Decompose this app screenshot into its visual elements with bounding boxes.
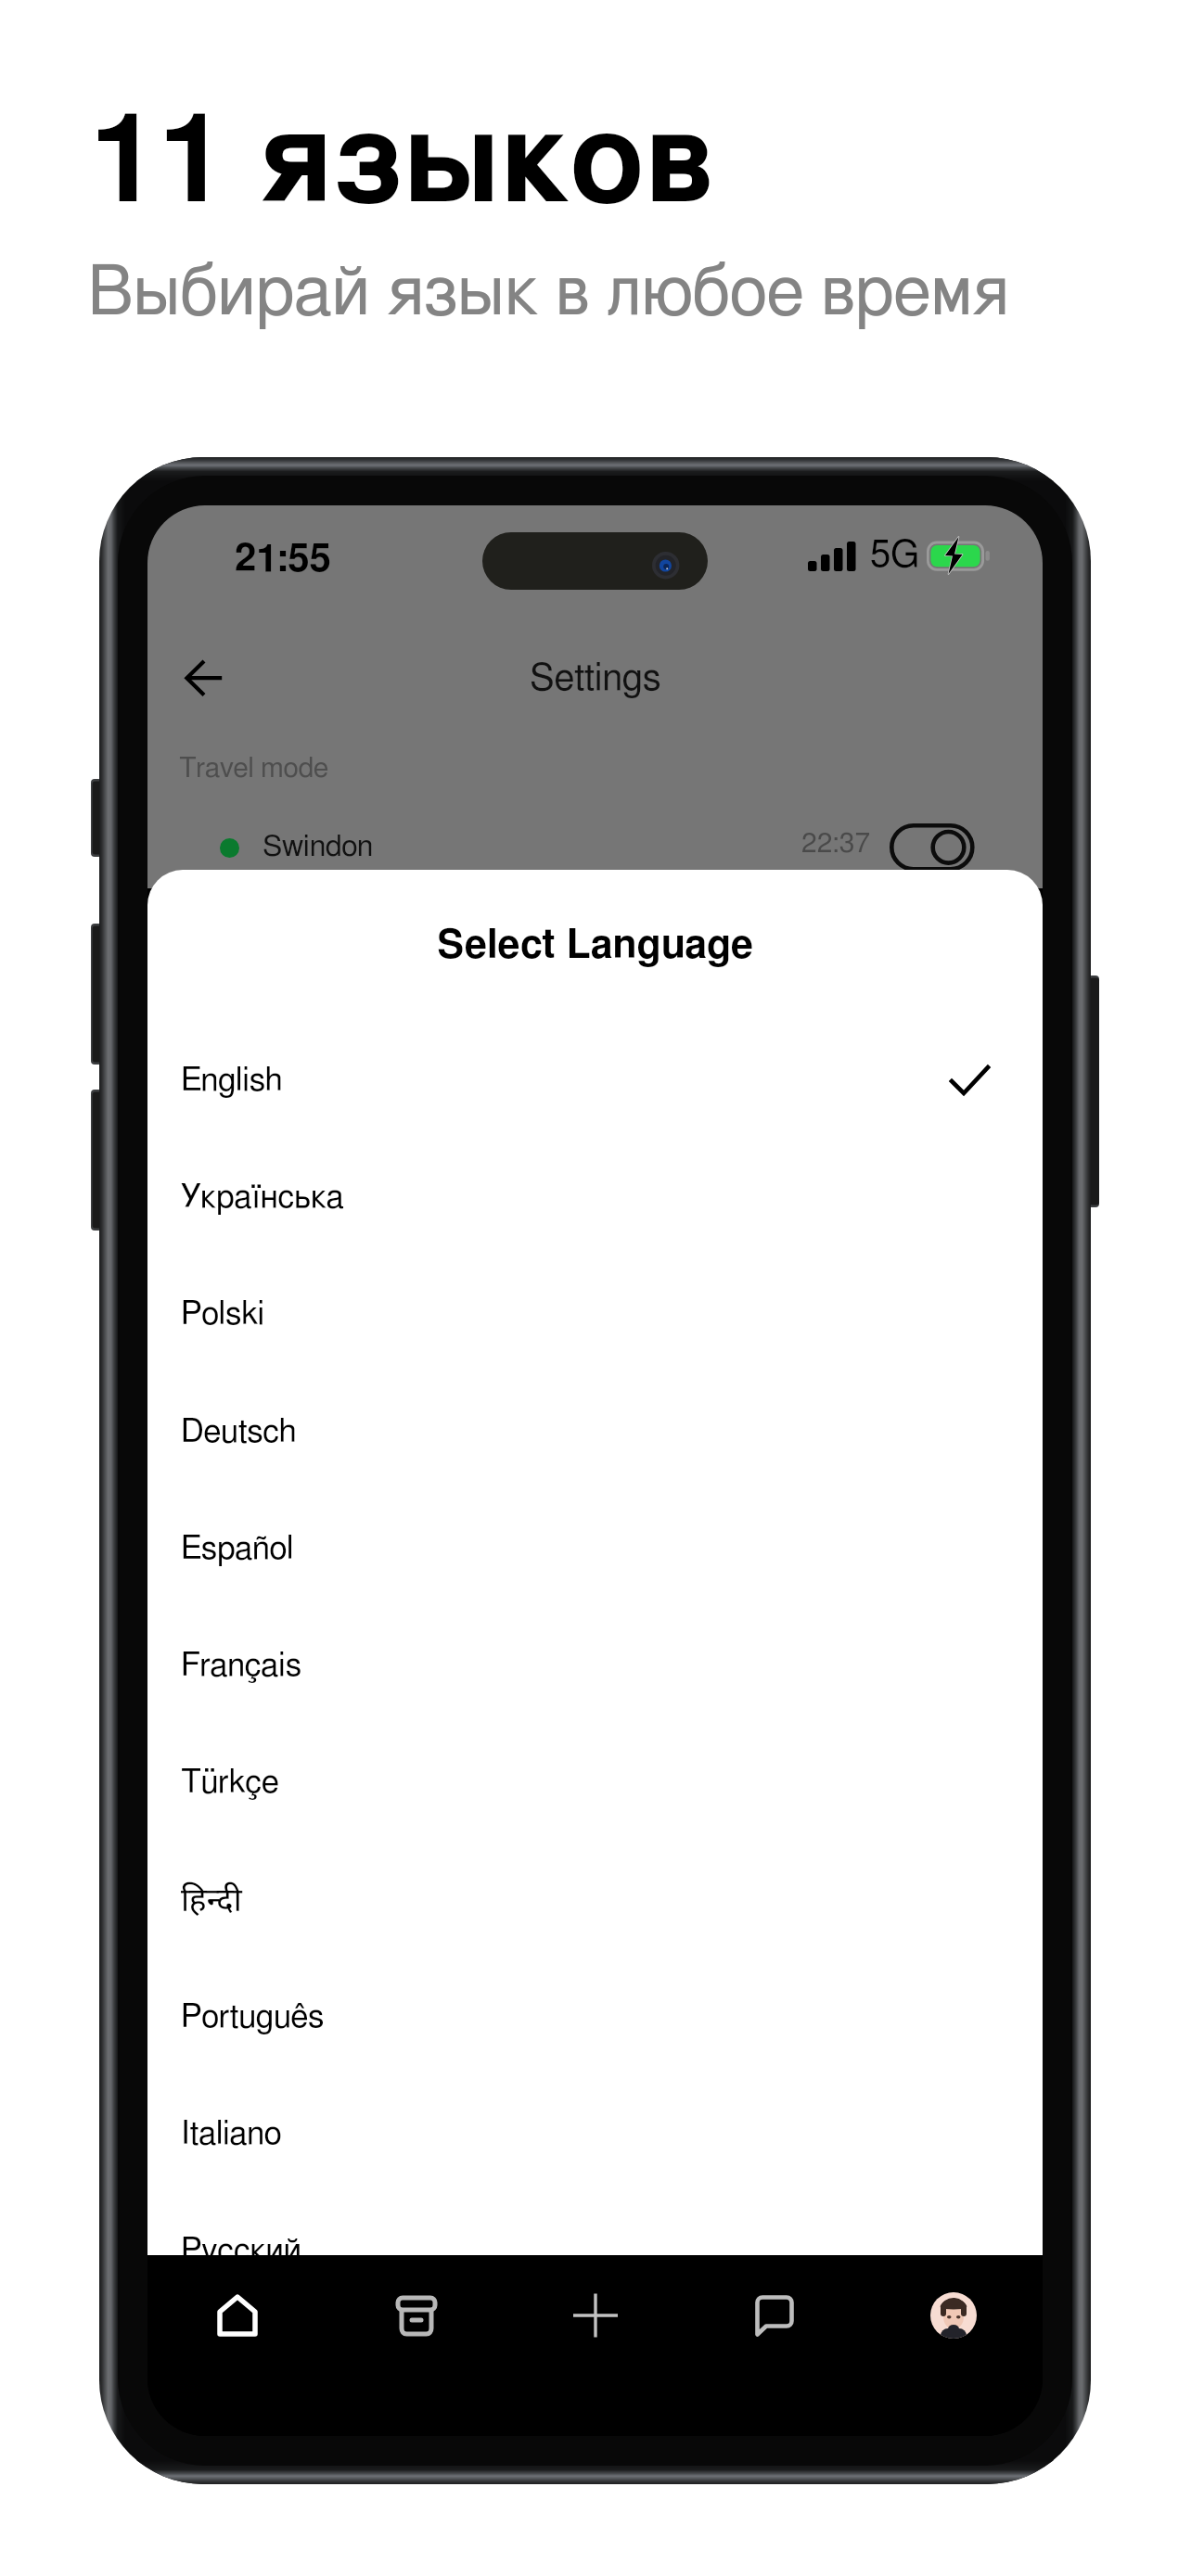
button[interactable]: Home bbox=[147, 2255, 327, 2376]
staticText: 11 языков bbox=[90, 103, 714, 226]
button[interactable]: हिन्दी bbox=[147, 1841, 1043, 1958]
staticText: Italiano bbox=[181, 2118, 282, 2150]
staticText: Polski bbox=[181, 1298, 265, 1331]
staticText: 22:37 bbox=[801, 830, 871, 858]
staticText: Türkçe bbox=[181, 1766, 279, 1799]
staticText: Settings bbox=[530, 660, 661, 697]
staticText: Українська bbox=[181, 1181, 344, 1214]
button[interactable]: Travel mode toggle bbox=[890, 823, 977, 872]
staticText: 21:55 bbox=[235, 540, 331, 579]
button[interactable]: Polski bbox=[147, 1256, 1043, 1372]
button[interactable]: Українська bbox=[147, 1139, 1043, 1256]
button[interactable]: Türkçe bbox=[147, 1724, 1043, 1841]
button[interactable]: Profile bbox=[864, 2255, 1043, 2376]
staticText: Русский bbox=[181, 2235, 301, 2255]
button[interactable]: Español bbox=[147, 1490, 1043, 1607]
button[interactable]: Português bbox=[147, 1958, 1043, 2075]
staticText: 5G bbox=[870, 537, 919, 574]
button[interactable]: Archive bbox=[327, 2255, 506, 2376]
staticText: हिन्दी bbox=[181, 1877, 242, 1921]
staticText: Deutsch bbox=[181, 1416, 297, 1448]
button[interactable]: Français bbox=[147, 1607, 1043, 1724]
staticText: Français bbox=[181, 1650, 301, 1682]
button[interactable]: English bbox=[147, 1022, 1043, 1139]
button[interactable]: Italiano bbox=[147, 2075, 1043, 2192]
button[interactable]: Create bbox=[506, 2255, 685, 2376]
staticText: Español bbox=[181, 1533, 294, 1565]
button[interactable]: Messages bbox=[685, 2255, 864, 2376]
button[interactable]: Deutsch bbox=[147, 1373, 1043, 1490]
staticText: Travel mode bbox=[179, 755, 328, 783]
button[interactable]: Русский bbox=[147, 2192, 1043, 2255]
staticText: Выбирай язык в любое время bbox=[87, 259, 1009, 328]
staticText: Swindon bbox=[263, 832, 374, 861]
staticText: English bbox=[181, 1065, 283, 1097]
staticText: Select Language bbox=[437, 926, 754, 966]
button[interactable]: Back bbox=[166, 643, 242, 713]
staticText: Português bbox=[181, 2001, 325, 2034]
